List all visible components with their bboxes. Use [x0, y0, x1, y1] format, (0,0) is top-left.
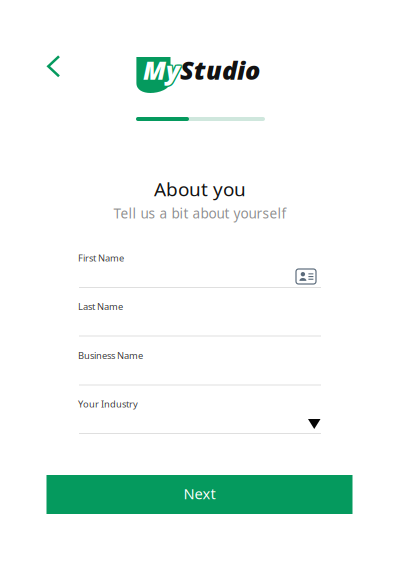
staticText: Next	[183, 483, 215, 503]
staticText: My	[144, 54, 181, 88]
staticText: My	[143, 53, 180, 87]
staticText: My	[142, 53, 179, 87]
staticText: Last Name	[78, 300, 123, 313]
button[interactable]: Next	[46, 475, 352, 514]
staticText: About you	[154, 176, 246, 202]
staticText: Studio	[180, 53, 260, 87]
staticText: My	[142, 54, 179, 88]
button[interactable]: Your Industry	[79, 396, 321, 434]
staticText: Your Industry	[78, 397, 138, 410]
staticText: Tell us a bit about yourself	[113, 204, 286, 222]
button[interactable]: Back	[36, 48, 72, 84]
staticText: Business Name	[78, 349, 143, 362]
staticText: My	[143, 52, 180, 86]
button[interactable]: Last Name	[79, 298, 321, 336]
staticText: My	[144, 52, 181, 86]
button[interactable]: Business Name	[79, 347, 321, 385]
staticText: My	[144, 53, 181, 87]
staticText: First Name	[78, 251, 124, 264]
staticText: My	[142, 52, 179, 86]
button[interactable]: First Name	[79, 250, 321, 288]
staticText: My	[143, 54, 180, 88]
